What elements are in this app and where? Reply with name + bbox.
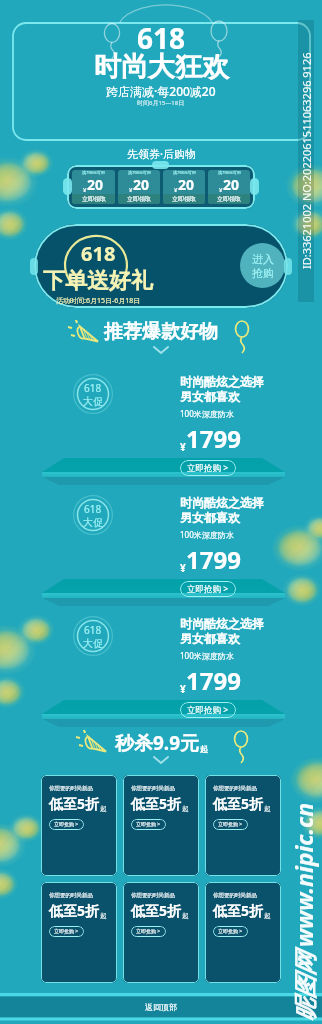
staticText: 活动时间:6月15日-6月18日 [56,296,141,306]
staticText: 20 [133,175,150,194]
button[interactable] [34,224,288,308]
staticText: 1799 [186,543,241,576]
staticText: 大促 [83,395,103,408]
button[interactable]: 你想要的时尚新品 [123,882,199,983]
staticText: ¥ [129,186,133,194]
staticText: 618 [84,381,102,395]
staticText: 立即抢购 > [54,821,79,828]
staticText: 秒杀9.9元 [115,730,200,756]
staticText: 100米深度防水 [180,408,234,419]
staticText: 起 [182,912,189,920]
staticText: 你想要的时尚新品 [49,785,93,792]
staticText: ¥ [180,561,186,575]
staticText: 1799 [186,664,241,697]
staticText: 立即抢购 > [136,821,161,828]
staticText: 起 [100,805,107,813]
staticText: 时尚酷炫之选择 [180,495,264,510]
staticText: 满798元可用 [82,170,105,175]
staticText: 抢购 [252,266,274,280]
button[interactable]: 你想要的时尚新品 [205,775,281,876]
staticText: 低至5折 [49,901,100,920]
staticText: ¥ [219,186,223,194]
staticText: 你想要的时尚新品 [213,892,257,899]
button[interactable]: 满798元可用 [72,170,115,204]
staticText: 你想要的时尚新品 [131,892,175,899]
staticText: 立即领取 [217,195,241,203]
staticText: 618 [137,19,186,57]
staticText: 男女都喜欢 [180,510,240,525]
button[interactable]: 返回顶部 [0,996,322,1018]
button[interactable]: 满798元可用 [208,170,250,204]
staticText: ID:33621002 NO:2022061511063296 9126 [299,52,314,269]
staticText: 下单送好礼 [43,267,153,295]
staticText: 先领券·后购物 [127,146,196,161]
button[interactable]: 立即抢购 > [180,460,236,476]
staticText: 时尚大狂欢 [94,50,229,84]
staticText: 立即抢购 > [187,462,229,474]
staticText: 立即抢购 > [54,928,79,935]
staticText: 低至5折 [131,901,182,920]
staticText: 你想要的时尚新品 [213,785,257,792]
staticText: 20 [87,175,104,194]
staticText: 返回顶部 [145,1002,177,1012]
staticText: 618 [84,502,102,516]
staticText: 起 [264,805,271,813]
staticText: 立即领取 [172,195,196,203]
button[interactable]: 你想要的时尚新品 [41,775,117,876]
staticText: 低至5折 [213,794,264,813]
staticText: 立即抢购 > [187,583,229,595]
staticText: 满798元可用 [173,170,196,175]
staticText: 时尚酷炫之选择 [180,616,264,631]
staticText: 立即领取 [127,195,151,203]
staticText: 立即抢购 > [136,928,161,935]
button[interactable]: 满798元可用 [163,170,205,204]
staticText: 满798元可用 [128,170,151,175]
staticText: ¥ [83,186,87,194]
staticText: 618 [84,623,102,637]
staticText: 立即领取 [82,195,106,203]
staticText: 大促 [83,516,103,529]
staticText: 起 [200,744,208,754]
staticText: 20 [178,175,195,194]
staticText: 男女都喜欢 [180,389,240,404]
staticText: 满798元可用 [218,170,241,175]
staticText: 起 [182,805,189,813]
staticText: 618 [81,240,116,267]
staticText: 1799 [186,422,241,455]
staticText: 立即抢购 > [218,821,243,828]
staticText: 时间6月15—18日 [137,99,185,107]
button[interactable]: 你想要的时尚新品 [205,882,281,983]
staticText: 低至5折 [213,901,264,920]
staticText: 起 [100,912,107,920]
staticText: ¥ [180,682,186,696]
staticText: 100米深度防水 [180,650,234,661]
button[interactable]: 你想要的时尚新品 [123,775,199,876]
staticText: 大促 [83,637,103,650]
button[interactable]: 立即抢购 > [180,581,236,597]
staticText: 20 [223,175,240,194]
staticText: 立即抢购 > [218,928,243,935]
staticText: 推荐爆款好物 [104,320,218,344]
button[interactable]: 满798元可用 [118,170,160,204]
staticText: 你想要的时尚新品 [49,892,93,899]
button[interactable]: 进入 [240,243,285,288]
staticText: ¥ [180,440,186,454]
staticText: 100米深度防水 [180,529,234,540]
staticText: 起 [264,912,271,920]
staticText: 低至5折 [131,794,182,813]
button[interactable]: 你想要的时尚新品 [41,882,117,983]
staticText: 时尚酷炫之选择 [180,374,264,389]
staticText: 男女都喜欢 [180,631,240,646]
staticText: 立即抢购 > [187,704,229,716]
staticText: 低至5折 [49,794,100,813]
staticText: 昵图网 www.nipic.cn [288,802,319,1022]
staticText: 进入 [252,252,274,266]
staticText: ¥ [174,186,178,194]
button[interactable]: 立即抢购 > [180,702,236,718]
staticText: 你想要的时尚新品 [131,785,175,792]
staticText: 跨店满减·每200减20 [106,83,216,99]
